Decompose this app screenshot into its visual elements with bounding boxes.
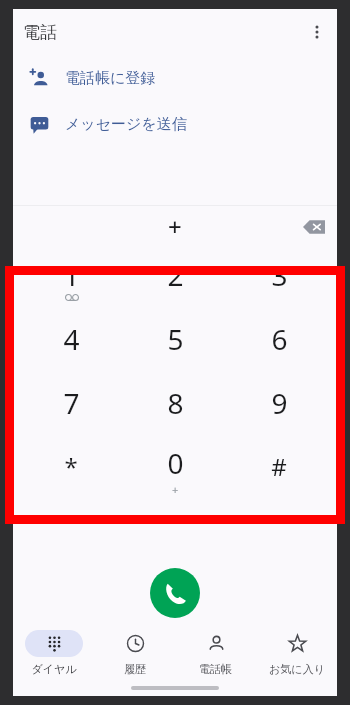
button[interactable]: 6 bbox=[227, 310, 331, 374]
staticText: 4 bbox=[63, 320, 80, 358]
staticText: 0 bbox=[167, 444, 184, 482]
staticText: 7 bbox=[63, 384, 80, 422]
button[interactable]: * bbox=[19, 438, 123, 502]
staticText: メッセージを送信 bbox=[65, 115, 187, 134]
button[interactable]: 0 bbox=[123, 438, 227, 502]
button[interactable]: 1 bbox=[19, 247, 123, 310]
staticText: 電話 bbox=[23, 22, 57, 43]
staticText: 1 bbox=[63, 256, 80, 294]
staticText: 電話帳に登録 bbox=[65, 69, 156, 88]
staticText: 2 bbox=[167, 256, 184, 294]
button[interactable]: 7 bbox=[19, 374, 123, 438]
button[interactable]: 電話帳 bbox=[175, 630, 256, 676]
staticText: ダイヤル bbox=[31, 662, 77, 676]
button[interactable]: 履歴 bbox=[94, 630, 175, 676]
staticText: 9 bbox=[271, 384, 288, 422]
button[interactable]: メッセージを送信 bbox=[13, 101, 337, 147]
button[interactable]: 電話帳に登録 bbox=[13, 55, 337, 101]
staticText: 履歴 bbox=[124, 662, 146, 676]
button[interactable]: Backspace bbox=[295, 208, 333, 246]
button[interactable]: 8 bbox=[123, 374, 227, 438]
button[interactable]: 9 bbox=[227, 374, 331, 438]
button[interactable]: 3 bbox=[227, 247, 331, 310]
staticText: 3 bbox=[271, 256, 288, 294]
button[interactable]: 5 bbox=[123, 310, 227, 374]
staticText: # bbox=[271, 450, 287, 483]
button[interactable]: Call bbox=[150, 568, 200, 618]
button[interactable]: 2 bbox=[123, 247, 227, 310]
button[interactable]: ダイヤル bbox=[13, 630, 94, 676]
staticText: 電話帳 bbox=[199, 662, 232, 676]
staticText: 6 bbox=[271, 320, 288, 358]
staticText: お気に入り bbox=[269, 662, 325, 676]
button[interactable]: # bbox=[227, 438, 331, 502]
staticText: 8 bbox=[167, 384, 184, 422]
button[interactable]: More options bbox=[297, 12, 337, 52]
staticText: * bbox=[64, 450, 78, 483]
staticText: 5 bbox=[167, 320, 184, 358]
staticText: + bbox=[168, 210, 182, 243]
staticText: + bbox=[172, 482, 179, 497]
button[interactable]: お気に入り bbox=[256, 630, 337, 676]
button[interactable]: 4 bbox=[19, 310, 123, 374]
